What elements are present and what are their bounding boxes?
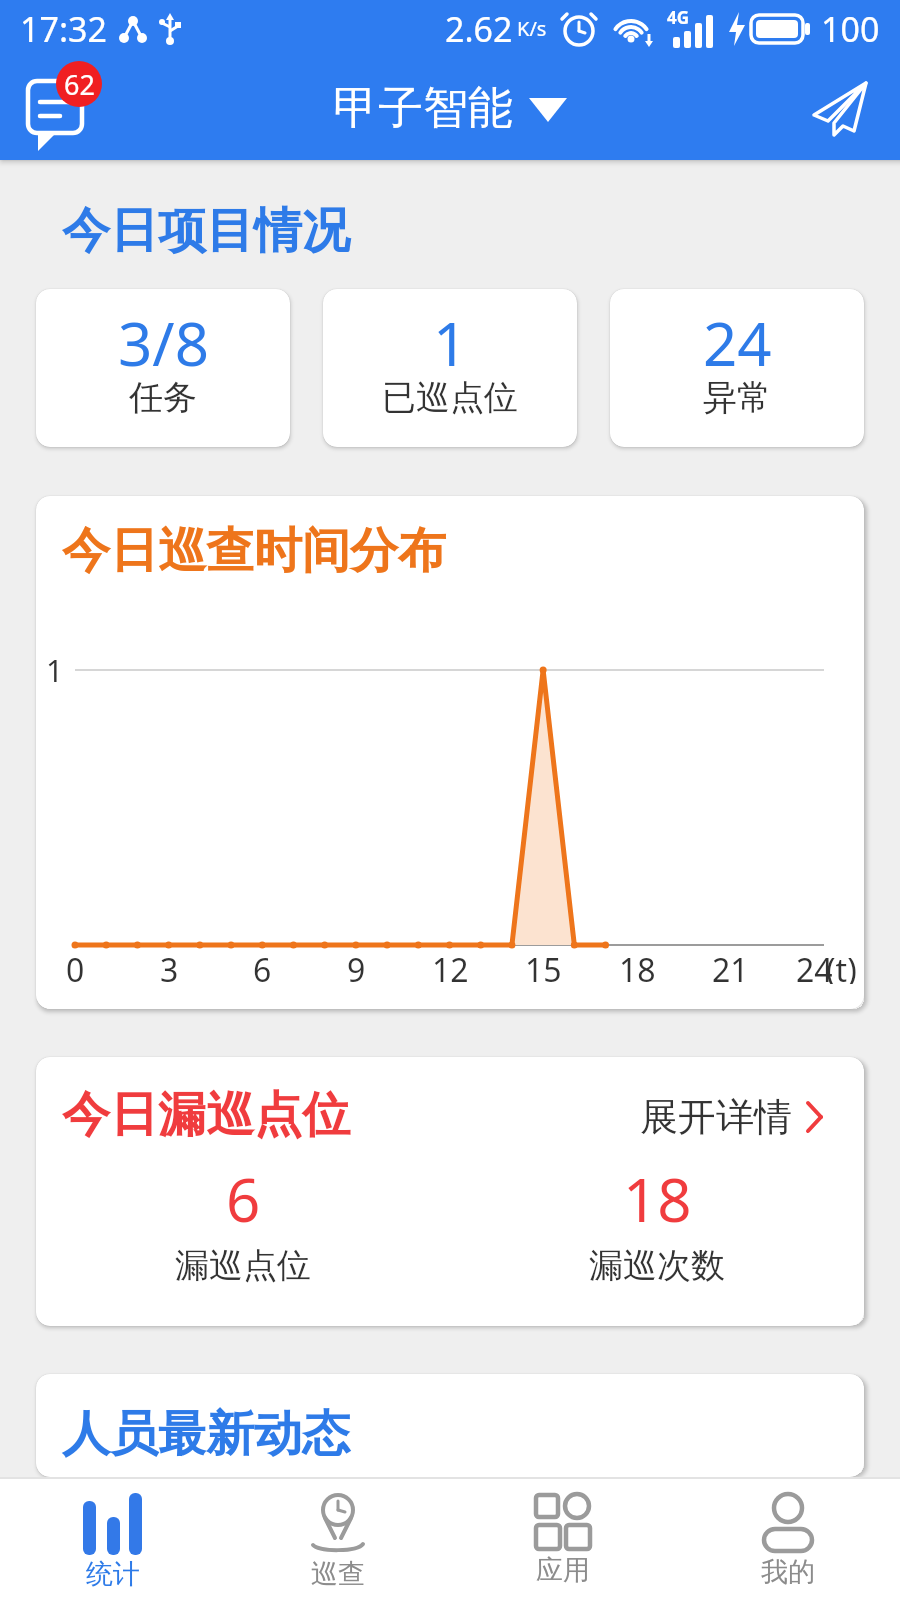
button[interactable]: 3/8 [36, 289, 290, 447]
button[interactable]: 我的 [675, 1479, 900, 1600]
staticText: 6 [226, 1158, 261, 1240]
staticText: 应用 [536, 1553, 590, 1587]
staticText: 1 [46, 650, 64, 691]
staticText: (t) [826, 948, 857, 984]
staticText: 12 [432, 948, 469, 984]
button[interactable]: 统计 [0, 1479, 225, 1600]
staticText: 3/8 [118, 302, 209, 384]
staticText: 人员最新动态 [62, 1404, 350, 1464]
staticText: 今日巡查时间分布 [62, 521, 446, 581]
staticText: 1 [433, 302, 468, 384]
staticText: 62 [64, 66, 95, 103]
staticText: 已巡点位 [382, 376, 518, 419]
staticText: 漏巡点位 [175, 1244, 311, 1287]
button[interactable]: 24 [610, 289, 864, 447]
staticText: 展开详情 [640, 1093, 792, 1141]
staticText: 24 [796, 948, 833, 984]
staticText: 6 [253, 948, 272, 984]
staticText: 100 [821, 6, 880, 52]
staticText: 甲子智能 [333, 80, 513, 137]
staticText: K/s [517, 15, 547, 42]
staticText: 17:32 [20, 6, 107, 52]
staticText: 统计 [86, 1557, 140, 1591]
staticText: 我的 [761, 1555, 815, 1589]
staticText: 18 [623, 1158, 692, 1240]
staticText: 15 [525, 948, 562, 984]
staticText: 9 [347, 948, 366, 984]
staticText: 4G [667, 6, 690, 29]
button[interactable]: 62 [26, 61, 102, 153]
staticText: 2.62 [445, 6, 513, 52]
button[interactable]: 巡查 [225, 1479, 450, 1600]
staticText: 18 [619, 948, 656, 984]
staticText: 3 [160, 948, 179, 984]
button[interactable]: 应用 [450, 1479, 675, 1600]
button[interactable]: 1 [323, 289, 577, 447]
button[interactable] [814, 83, 868, 135]
staticText: 今日项目情况 [62, 201, 350, 261]
staticText: 巡查 [311, 1557, 365, 1591]
button[interactable]: 展开详情 [640, 1093, 824, 1141]
staticText: 异常 [703, 376, 771, 419]
staticText: 任务 [129, 376, 197, 419]
staticText: 今日漏巡点位 [62, 1085, 350, 1145]
staticText: 21 [712, 948, 749, 984]
staticText: 漏巡次数 [589, 1244, 725, 1287]
staticText: 24 [703, 302, 772, 384]
button[interactable]: 甲子智能 [333, 80, 567, 137]
staticText: 0 [66, 948, 85, 984]
